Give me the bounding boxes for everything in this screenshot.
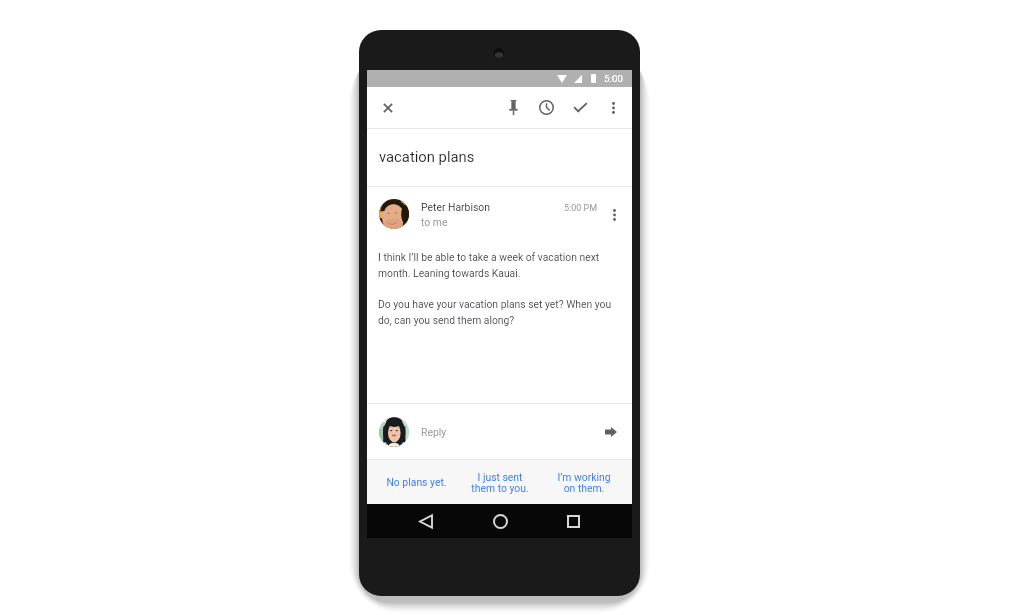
button[interactable]: No plans yet. [375,460,458,504]
button[interactable]: I just sent them to you. [458,460,542,504]
button[interactable]: Done [568,95,593,120]
staticText: I just sent them to you. [471,471,529,494]
staticText: 5:00 [604,73,623,84]
button[interactable]: Reply [367,404,632,459]
staticText: I’m working on them. [557,471,611,494]
staticText: to me [421,216,448,228]
button[interactable]: Message options [604,205,624,225]
staticText: 5:00 PM [564,203,598,214]
button[interactable]: Send [600,421,622,443]
staticText: No plans yet. [386,476,447,488]
button[interactable]: Recents [558,506,588,536]
staticText: Reply [421,426,447,438]
button[interactable]: I’m working on them. [542,460,626,504]
button[interactable]: Pin [501,95,526,120]
button[interactable]: More options [601,95,626,120]
staticText: Do you have your vacation plans set yet?… [378,298,621,326]
button[interactable]: Back [411,506,441,536]
staticText: Peter Harbison [421,201,490,213]
button[interactable]: vacation plans [367,129,632,186]
button[interactable]: I think I’ll be able to take a week of v… [367,239,632,314]
button[interactable]: Close [375,95,400,120]
button[interactable]: Peter Harbison [367,187,632,239]
button[interactable]: Snooze [534,95,559,120]
staticText: I think I’ll be able to take a week of v… [378,251,621,279]
button[interactable]: Home [485,506,515,536]
staticText: vacation plans [379,148,475,165]
